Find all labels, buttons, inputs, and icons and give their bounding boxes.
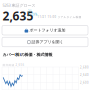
staticText: 2,640 xyxy=(80,73,89,77)
staticText: 2,600 xyxy=(80,81,89,84)
staticText: 5253 東証グロース xyxy=(2,3,35,8)
staticText: 前日終値 2,656 xyxy=(2,63,24,67)
button[interactable]: ポートフォリオ追加 xyxy=(2,25,88,35)
staticText: ポートフォリオ追加 xyxy=(29,28,65,33)
staticText: カバー(株)の株価・株式情報 xyxy=(2,52,52,57)
button[interactable]: 証券アプリを開く xyxy=(2,37,88,47)
staticText: 2,680 xyxy=(80,66,89,69)
staticText: 2,635 xyxy=(2,8,33,24)
staticText: -0.79% xyxy=(27,13,37,16)
staticText: 11/21 15:00 リアルタイム株価 xyxy=(37,15,81,19)
staticText: -21 xyxy=(27,10,32,13)
staticText: 証券アプリを開く xyxy=(31,39,63,44)
